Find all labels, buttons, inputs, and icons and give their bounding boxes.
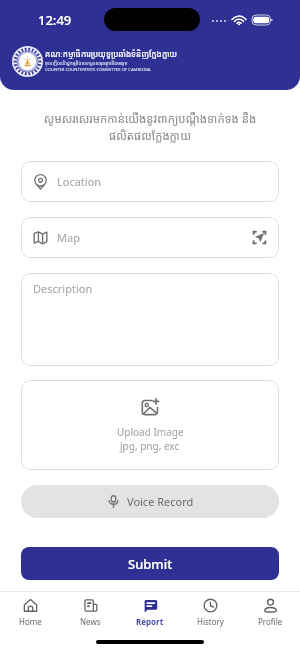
button[interactable]: Profile: [244, 598, 296, 627]
staticText: គណៈកម្មាធិការប្រយុទ្ធប្រឆាំងទំនិញក្លែងក្…: [45, 48, 178, 59]
button[interactable]: Voice Record: [21, 485, 279, 518]
staticText: Submit: [128, 555, 173, 573]
button[interactable]: Description: [21, 273, 279, 366]
staticText: News: [80, 616, 101, 627]
staticText: ចុះបញ្ជីពាណិជ្ជកម្មនិងសហគ្រាសធុនតូចនិងមធ…: [45, 60, 128, 66]
staticText: 12:49: [38, 11, 72, 29]
staticText: Upload Image: [117, 425, 184, 439]
staticText: សូមសរសេរមកកាន់យើងនូវពាក្យបណ្តឹងទាក់ទង នឹ…: [21, 111, 279, 143]
button[interactable]: Locate me: [252, 230, 267, 245]
button[interactable]: History: [184, 598, 236, 627]
staticText: Description: [33, 281, 93, 296]
staticText: Report: [136, 616, 164, 627]
button[interactable]: Upload Image: [21, 380, 279, 470]
button[interactable]: Home: [4, 598, 56, 627]
button[interactable]: Location: [21, 161, 279, 202]
staticText: jpg, png, exc: [120, 439, 180, 453]
staticText: Home: [19, 616, 42, 627]
staticText: Voice Record: [127, 494, 194, 509]
button[interactable]: Map: [21, 217, 279, 258]
staticText: COUNTER COUNTERFEITS COMMITTEE OF CAMBOD…: [45, 67, 151, 73]
staticText: Profile: [258, 616, 283, 627]
button[interactable]: Submit: [21, 547, 279, 580]
staticText: History: [197, 616, 224, 627]
button[interactable]: Report: [124, 598, 176, 627]
staticText: Location: [57, 174, 102, 189]
button[interactable]: News: [64, 598, 116, 627]
staticText: Map: [57, 230, 80, 245]
